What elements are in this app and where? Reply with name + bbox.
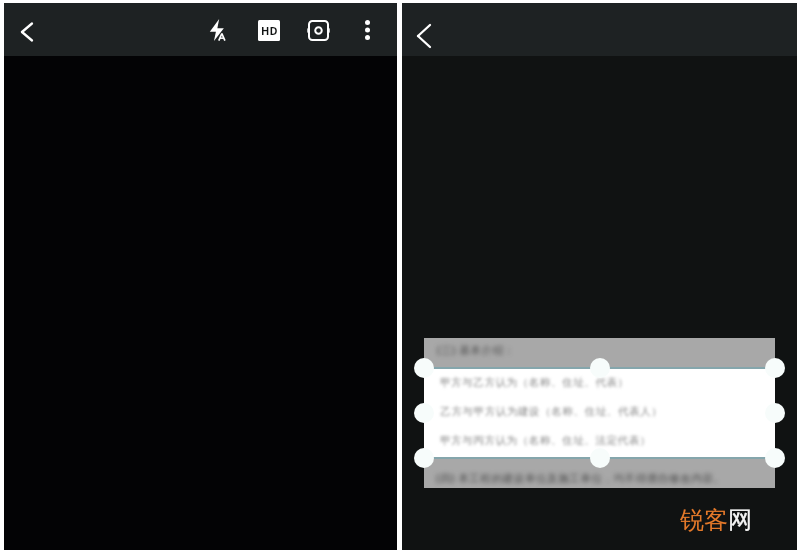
staticText: 甲方与丙方认为（名称、住址、法定代表） (440, 434, 651, 447)
staticText: (四) 本工程的建设单位及施工单位，均不得擅自修改内容。 (436, 471, 725, 485)
button[interactable]: Resize handle (414, 358, 434, 378)
staticText: 锐客 (680, 505, 728, 535)
button[interactable]: Back (408, 20, 440, 52)
button[interactable]: Resize handle (590, 448, 610, 468)
staticText: 甲方与乙方认为（名称、住址、代表） (440, 376, 629, 389)
button[interactable]: Flash auto (200, 13, 234, 47)
button[interactable]: Resize handle (765, 448, 785, 468)
staticText: (三) 基本介绍： (437, 343, 515, 357)
staticText: HD (261, 23, 278, 38)
button[interactable]: Scan mode (301, 13, 335, 47)
button[interactable]: Resize handle (765, 358, 785, 378)
button[interactable]: More options (351, 14, 383, 46)
button[interactable]: Back (11, 16, 43, 48)
staticText: 乙方与甲方认为建设（名称、住址、代表人） (440, 405, 662, 418)
button[interactable]: HD quality (252, 13, 286, 47)
staticText: 网 (728, 505, 752, 535)
button[interactable]: Resize handle (765, 403, 785, 423)
button[interactable]: Resize handle (590, 358, 610, 378)
button[interactable]: Resize handle (414, 448, 434, 468)
button[interactable]: Resize handle (414, 403, 434, 423)
